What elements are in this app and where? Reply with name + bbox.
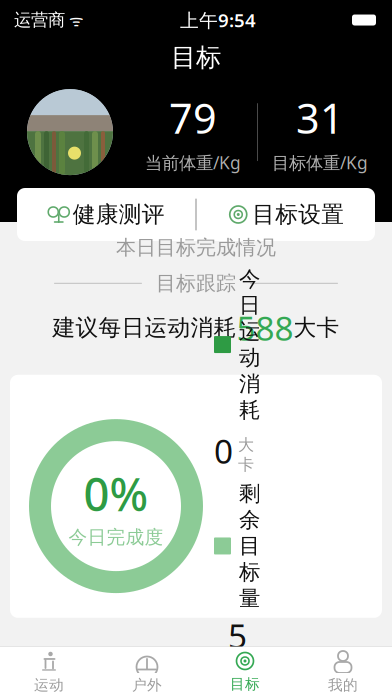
staticText: 当前体重/Kg [145, 151, 241, 174]
staticText: 588 [228, 613, 247, 696]
staticText: 运营商 [14, 9, 65, 31]
staticText: 剩余目标量 [239, 480, 260, 611]
staticText: 我的 [328, 676, 358, 694]
staticText: 31 [296, 90, 344, 145]
staticText: 目标跟踪 [156, 271, 236, 296]
staticText: 588 [236, 306, 293, 350]
staticText: 本日目标完成情况 [116, 235, 276, 260]
staticText: 79 [169, 90, 217, 145]
button[interactable]: 我的 [294, 647, 392, 696]
staticText: 目标 [230, 675, 260, 693]
button[interactable]: 运动 [0, 647, 98, 696]
button[interactable]: 目标设置 [196, 188, 375, 241]
staticText: 户外 [132, 676, 162, 694]
staticText: 0 [214, 429, 233, 473]
staticText: 今日运动消耗 [239, 266, 260, 423]
staticText: 0% [83, 463, 148, 524]
staticText: 建议每日运动消耗 [52, 314, 236, 342]
staticText: 目标设置 [252, 201, 344, 228]
button[interactable]: 户外 [98, 647, 196, 696]
button[interactable]: 目标 [196, 647, 294, 696]
staticText: 目标体重/Kg [272, 151, 368, 174]
staticText: 今日完成度 [68, 526, 163, 549]
button[interactable]: 健康测评 [17, 188, 195, 241]
staticText: 大卡 [252, 664, 268, 696]
staticText: 大卡 [293, 314, 339, 342]
staticText: 目标 [171, 42, 221, 73]
staticText: 健康测评 [73, 201, 165, 228]
staticText: 大卡 [238, 435, 254, 474]
staticText: 运动 [34, 676, 64, 694]
staticText: ᯤ [65, 9, 84, 31]
staticText: 上午9:54 [180, 8, 256, 32]
